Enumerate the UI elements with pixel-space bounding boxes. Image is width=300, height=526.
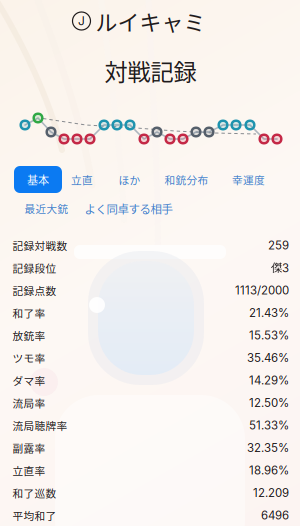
staticText: 21.43%: [249, 306, 289, 320]
staticText: ほか: [118, 172, 140, 187]
staticText: 1113/2000: [235, 283, 289, 297]
staticText: 放銃率: [12, 327, 45, 343]
staticText: J: [78, 14, 85, 28]
staticText: 和了率: [12, 305, 45, 320]
button[interactable]: 和銃分布: [158, 166, 214, 193]
staticText: 流局聴牌率: [12, 417, 67, 433]
staticText: 流局率: [12, 395, 45, 410]
staticText: 最近大銃: [24, 201, 68, 216]
staticText: 32.35%: [247, 441, 289, 455]
staticText: 立直: [71, 172, 93, 187]
staticText: よく同卓する相手: [84, 200, 172, 217]
button[interactable]: 基本: [14, 166, 62, 193]
staticText: 15.53%: [249, 328, 289, 342]
staticText: 和銃分布: [164, 172, 208, 187]
staticText: 6496: [261, 508, 289, 522]
staticText: 和了巡数: [12, 485, 56, 500]
staticText: 12.209: [253, 486, 289, 500]
staticText: 記録点数: [12, 282, 56, 298]
button[interactable]: よく同卓する相手: [80, 200, 176, 216]
staticText: 副露率: [12, 440, 45, 455]
button[interactable]: 立直: [62, 166, 102, 193]
staticText: ダマ率: [12, 372, 45, 388]
staticText: 傑3: [271, 260, 289, 275]
staticText: 平均和了: [12, 507, 56, 523]
staticText: 対戦記録: [104, 54, 196, 87]
staticText: 記録対戦数: [12, 237, 67, 253]
staticText: 幸運度: [232, 172, 265, 187]
staticText: ツモ率: [12, 350, 45, 365]
staticText: 51.33%: [249, 418, 289, 432]
staticText: 立直率: [12, 462, 45, 478]
button[interactable]: 幸運度: [224, 166, 272, 193]
staticText: 基本: [27, 171, 49, 188]
button[interactable]: 最近大銃: [22, 200, 70, 216]
staticText: ルイキャミ: [95, 5, 205, 37]
staticText: 記録段位: [12, 260, 56, 275]
staticText: 12.50%: [249, 396, 289, 410]
button[interactable]: ほか: [109, 166, 149, 193]
staticText: 259: [268, 238, 289, 252]
staticText: 18.96%: [249, 463, 289, 477]
staticText: 14.29%: [249, 373, 289, 387]
staticText: 35.46%: [247, 351, 289, 365]
